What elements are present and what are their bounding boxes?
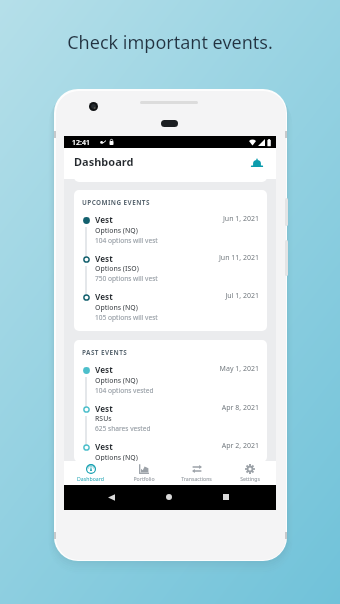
staticText: Portfolio bbox=[133, 475, 155, 482]
staticText: 750 options will vest bbox=[95, 274, 158, 283]
staticText: May 1, 2021 bbox=[174, 364, 259, 374]
staticText: Dashboard bbox=[74, 154, 134, 169]
staticText: Options (NQ) bbox=[95, 376, 138, 385]
staticText: Check important events. bbox=[0, 30, 340, 55]
staticText: Options (NQ) bbox=[95, 453, 138, 462]
staticText: Vest bbox=[95, 441, 113, 452]
button[interactable]: Dashboard bbox=[64, 461, 117, 485]
staticText: Vest bbox=[95, 214, 113, 225]
staticText: Transactions bbox=[181, 475, 212, 482]
staticText: Vest bbox=[95, 364, 113, 375]
staticText: 625 shares vested bbox=[95, 424, 151, 433]
staticText: Vest bbox=[95, 253, 113, 264]
staticText: 105 options will vest bbox=[95, 313, 158, 322]
staticText: 104 options vested bbox=[95, 386, 154, 395]
staticText: PAST EVENTS bbox=[82, 348, 128, 357]
staticText: Dashboard bbox=[77, 475, 104, 482]
staticText: Apr 2, 2021 bbox=[174, 441, 259, 451]
staticText: Apr 8, 2021 bbox=[174, 403, 259, 413]
staticText: Options (NQ) bbox=[95, 226, 138, 235]
staticText: Vest bbox=[95, 291, 113, 302]
staticText: Options (NQ) bbox=[95, 303, 138, 312]
staticText: Options (ISO) bbox=[95, 264, 139, 273]
staticText: Jun 1, 2021 bbox=[174, 214, 259, 224]
staticText: Vest bbox=[95, 403, 113, 414]
button[interactable]: Portfolio bbox=[117, 461, 170, 485]
button[interactable]: Settings bbox=[223, 461, 276, 485]
button[interactable]: Notifications bbox=[250, 157, 264, 171]
staticText: 12:41 bbox=[72, 138, 90, 148]
button[interactable]: Transactions bbox=[170, 461, 223, 485]
staticText: Jul 1, 2021 bbox=[174, 291, 259, 301]
staticText: Jun 11, 2021 bbox=[174, 253, 259, 263]
staticText: 104 options will vest bbox=[95, 236, 158, 245]
staticText: RSUs bbox=[95, 414, 112, 423]
staticText: UPCOMING EVENTS bbox=[82, 198, 150, 207]
staticText: Settings bbox=[240, 475, 260, 482]
